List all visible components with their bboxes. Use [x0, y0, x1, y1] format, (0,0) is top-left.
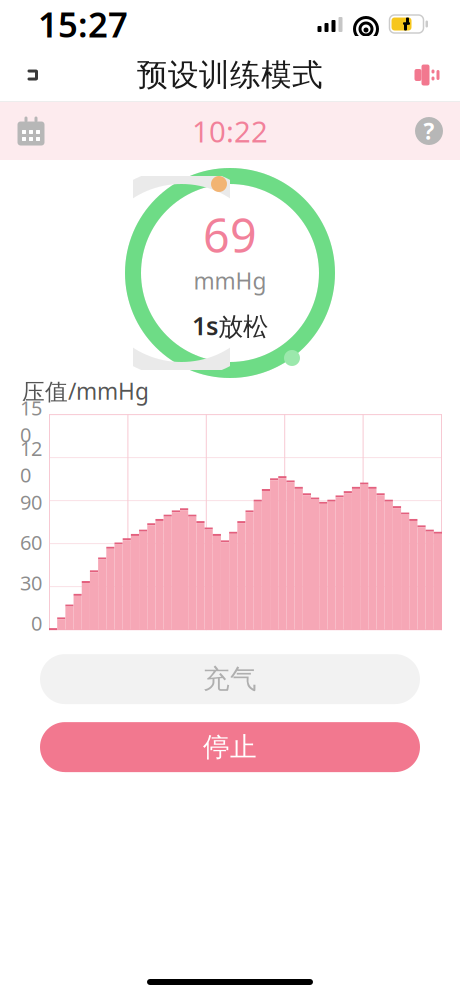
staticText: ?: [423, 116, 434, 146]
staticText: 150: [20, 394, 42, 448]
button[interactable]: 返回: [6, 48, 60, 102]
staticText: 69: [203, 204, 257, 266]
staticText: 30: [20, 569, 42, 596]
staticText: 0: [31, 610, 42, 636]
staticText: 90: [20, 489, 42, 515]
button[interactable]: 历史记录: [4, 106, 58, 156]
staticText: mmHg: [193, 265, 266, 296]
button[interactable]: 停止: [40, 722, 420, 772]
staticText: 120: [20, 435, 42, 488]
button[interactable]: 充气: [40, 654, 420, 704]
staticText: 1s放松: [192, 309, 268, 342]
staticText: 15:27: [38, 1, 128, 47]
button[interactable]: 帮助: [402, 106, 456, 156]
staticText: 10:22: [192, 111, 268, 150]
button[interactable]: 声音: [400, 48, 454, 102]
staticText: 压值/mmHg: [22, 376, 149, 406]
staticText: 停止: [203, 731, 257, 763]
staticText: 60: [20, 529, 42, 556]
staticText: 预设训练模式: [137, 56, 323, 94]
staticText: 充气: [203, 663, 257, 695]
